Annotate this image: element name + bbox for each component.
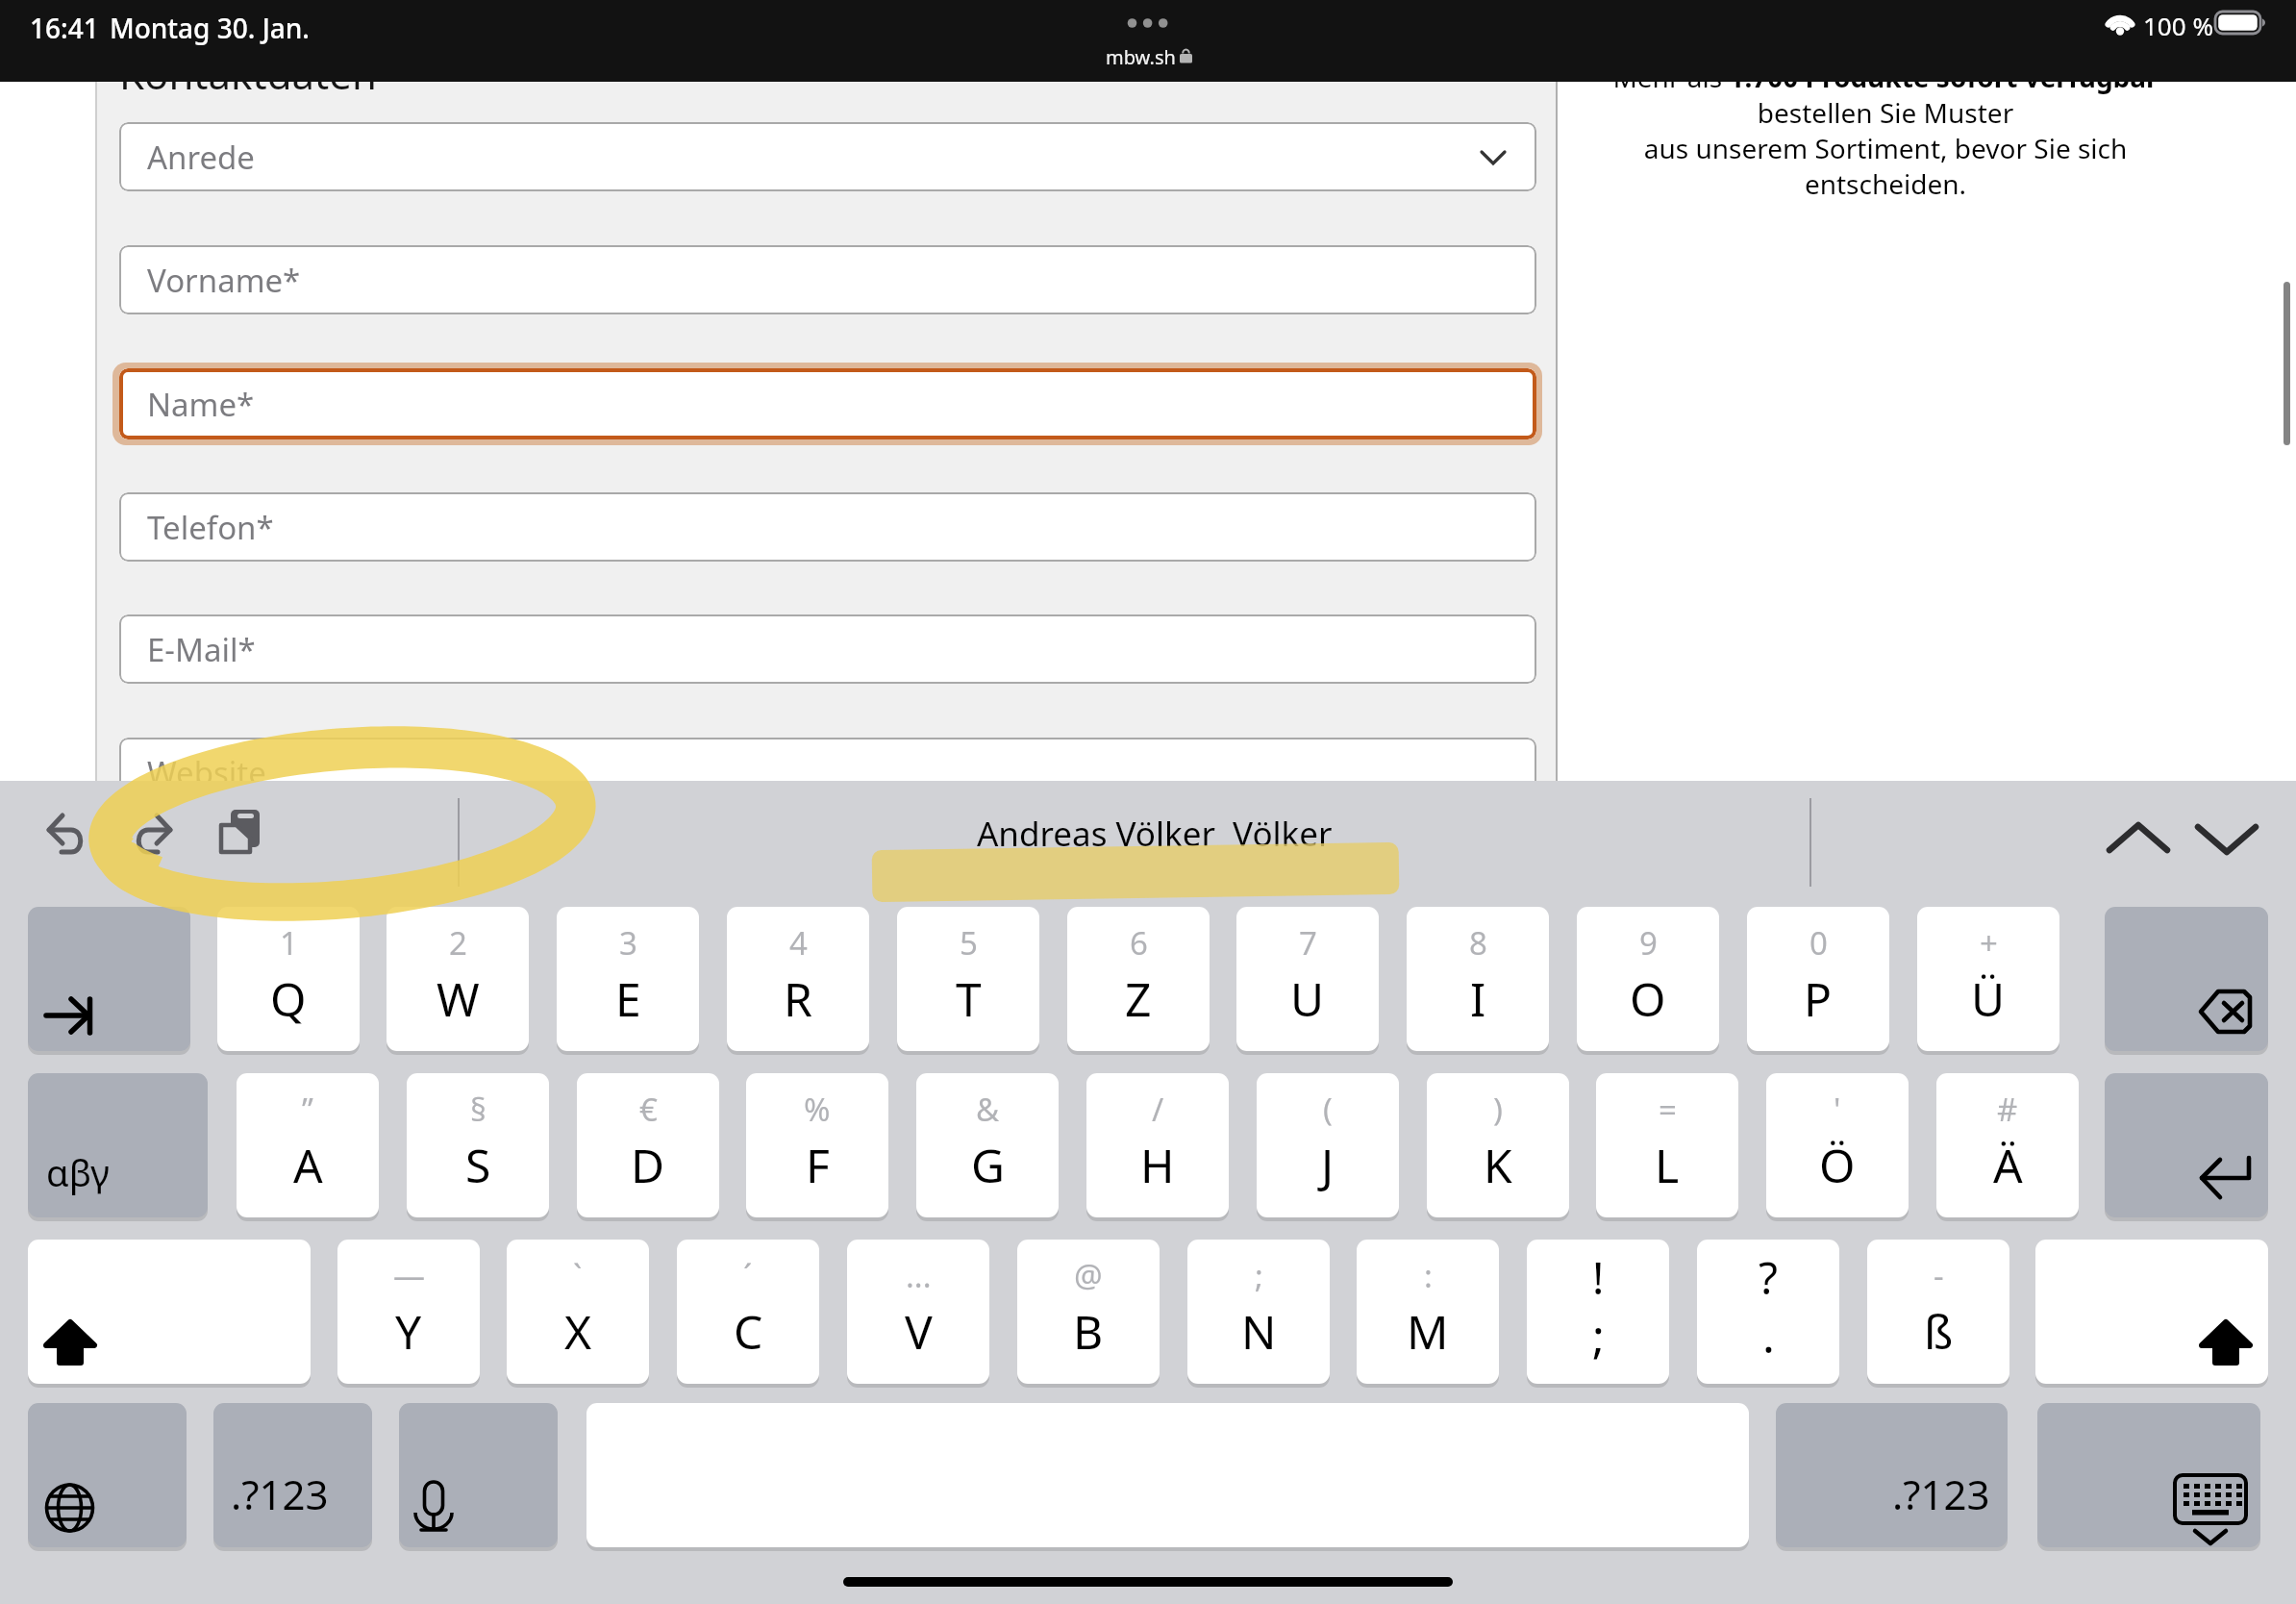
staticText: ' [1834, 1088, 1841, 1131]
staticText: 4 [789, 921, 808, 965]
staticText: X [564, 1300, 592, 1363]
staticText: K [1484, 1134, 1512, 1196]
staticText: O [1630, 967, 1666, 1030]
button[interactable]: 4 [727, 907, 869, 1051]
button[interactable]: E-Mail* [119, 614, 1536, 684]
button[interactable]: Anrede [119, 122, 1536, 191]
staticText: A [293, 1134, 323, 1196]
button[interactable]: ! [1527, 1240, 1669, 1384]
button[interactable]: 7 [1236, 907, 1379, 1051]
staticText: 7 [1299, 921, 1317, 965]
staticText: Anrede [147, 136, 255, 179]
staticText: .?123 [231, 1466, 329, 1521]
button[interactable]: ; [1187, 1240, 1330, 1384]
button[interactable]: ( [1257, 1073, 1399, 1217]
staticText: + [1980, 921, 1998, 965]
button[interactable]: ... [847, 1240, 989, 1384]
button[interactable]: Change keyboard [28, 1403, 187, 1547]
staticText: U [1290, 967, 1325, 1030]
staticText: C [734, 1300, 763, 1363]
button[interactable]: Telefon* [119, 492, 1536, 562]
button[interactable]: 8 [1407, 907, 1549, 1051]
staticText: αβγ [46, 1147, 110, 1197]
button[interactable]: αβγ [28, 1073, 208, 1217]
button[interactable]: = [1596, 1073, 1738, 1217]
button[interactable]: Dictation [399, 1403, 558, 1547]
staticText: 3 [619, 921, 637, 965]
button[interactable]: ` [507, 1240, 649, 1384]
button[interactable]: + [1917, 907, 2059, 1051]
staticText: W [437, 967, 480, 1030]
staticText: & [976, 1088, 1000, 1131]
button[interactable]: Redo [132, 812, 178, 858]
staticText: ” [302, 1088, 313, 1131]
button[interactable]: Space [586, 1403, 1749, 1547]
staticText: = [1659, 1088, 1677, 1131]
staticText: ( [1323, 1088, 1333, 1131]
staticText: 0 [1809, 921, 1828, 965]
staticText: V [905, 1300, 933, 1363]
staticText: E [615, 967, 641, 1030]
staticText: ´ [743, 1254, 753, 1297]
staticText: @ [1074, 1254, 1103, 1297]
button[interactable]: ) [1427, 1073, 1569, 1217]
staticText: M [1407, 1300, 1449, 1363]
staticText: E-Mail* [147, 628, 256, 671]
button[interactable]: 6 [1067, 907, 1210, 1051]
button[interactable]: : [1357, 1240, 1499, 1384]
button[interactable]: Next field [2192, 815, 2261, 873]
button[interactable]: Name* [119, 368, 1536, 439]
button[interactable]: Tab [28, 907, 190, 1051]
button[interactable]: 1 [217, 907, 360, 1051]
button[interactable]: Paste [213, 806, 271, 864]
button[interactable]: % [746, 1073, 888, 1217]
button[interactable]: ? [1697, 1240, 1839, 1384]
button[interactable]: § [407, 1073, 549, 1217]
button[interactable]: Website [119, 738, 1536, 807]
staticText: ? [1759, 1247, 1778, 1308]
button[interactable]: Vorname* [119, 245, 1536, 314]
staticText: H [1140, 1134, 1175, 1196]
button[interactable]: Hide keyboard [2037, 1403, 2260, 1547]
staticText: P [1804, 967, 1833, 1030]
staticText: Andreas Völker Völker [977, 811, 1333, 857]
staticText: R [784, 967, 812, 1030]
button[interactable]: 0 [1747, 907, 1889, 1051]
button[interactable]: 9 [1577, 907, 1719, 1051]
staticText: .?123 [1892, 1466, 1990, 1521]
button[interactable]: Return [2105, 1073, 2268, 1217]
button[interactable]: Undo [45, 812, 91, 858]
button[interactable]: ' [1766, 1073, 1909, 1217]
button[interactable]: 3 [557, 907, 699, 1051]
staticText: G [971, 1134, 1005, 1196]
button[interactable]: — [337, 1240, 480, 1384]
button[interactable]: ´ [677, 1240, 819, 1384]
button[interactable]: 2 [387, 907, 529, 1051]
button[interactable]: .?123 [1776, 1403, 2008, 1547]
staticText: % [804, 1088, 831, 1131]
staticText: Vorname* [147, 259, 301, 302]
button[interactable]: 5 [897, 907, 1039, 1051]
button[interactable]: Shift right [2035, 1240, 2268, 1384]
staticText: J [1321, 1134, 1335, 1196]
button[interactable]: # [1936, 1073, 2079, 1217]
staticText: 6 [1130, 921, 1148, 965]
button[interactable]: / [1086, 1073, 1229, 1217]
button[interactable]: Previous field [2104, 815, 2173, 873]
button[interactable]: .?123 [213, 1403, 372, 1547]
button[interactable]: - [1867, 1240, 2009, 1384]
staticText: Q [270, 967, 307, 1030]
button[interactable]: ” [237, 1073, 379, 1217]
button[interactable]: & [916, 1073, 1059, 1217]
staticText: € [639, 1088, 658, 1131]
staticText: Ö [1819, 1134, 1856, 1196]
button[interactable]: Shift [28, 1240, 311, 1384]
staticText: T [956, 967, 982, 1030]
staticText: 8 [1469, 921, 1487, 965]
button[interactable]: @ [1017, 1240, 1160, 1384]
staticText: Y [395, 1300, 422, 1363]
staticText: 100 % [2143, 9, 2213, 42]
staticText: — [393, 1254, 425, 1297]
button[interactable]: € [577, 1073, 719, 1217]
button[interactable]: Backspace [2105, 907, 2268, 1051]
